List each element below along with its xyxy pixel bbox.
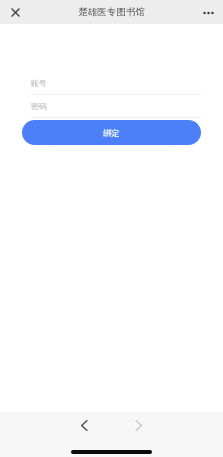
- staticText: 账号: [31, 78, 47, 88]
- staticText: 密码: [31, 101, 47, 111]
- button[interactable]: 绑定: [22, 120, 201, 145]
- button[interactable]: 密码: [0, 95, 223, 118]
- button[interactable]: Forward: [125, 411, 153, 439]
- staticText: 楚雄医专图书馆: [78, 6, 145, 18]
- button[interactable]: Close: [5, 2, 26, 23]
- button[interactable]: More options: [197, 2, 219, 24]
- button[interactable]: 账号: [0, 72, 223, 95]
- button[interactable]: Back: [70, 411, 98, 439]
- staticText: 绑定: [103, 128, 120, 139]
